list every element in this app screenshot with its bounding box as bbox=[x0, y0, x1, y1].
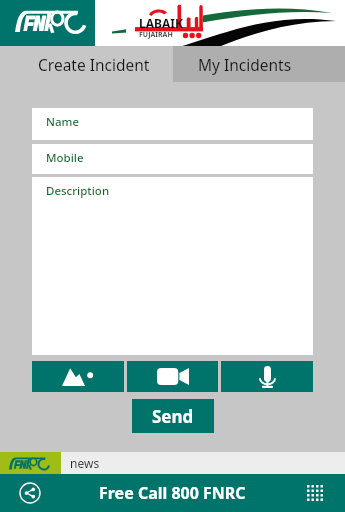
staticText: Mobile bbox=[46, 150, 84, 166]
button[interactable]: Record video bbox=[127, 361, 218, 392]
staticText: Name bbox=[46, 114, 79, 130]
button[interactable]: Free Call 800 FNRC bbox=[60, 474, 285, 512]
button[interactable]: Mobile bbox=[32, 144, 313, 174]
staticText: Description bbox=[46, 183, 110, 199]
button[interactable]: Send bbox=[132, 399, 214, 433]
staticText: Create Incident bbox=[38, 54, 150, 75]
staticText: LABAIK bbox=[139, 15, 183, 31]
button[interactable]: My Incidents bbox=[173, 46, 345, 82]
button[interactable]: Description bbox=[32, 177, 313, 355]
button[interactable]: Create Incident bbox=[0, 46, 173, 82]
button[interactable]: news bbox=[70, 452, 345, 474]
staticText: FUJAIRAH bbox=[139, 30, 173, 40]
button[interactable]: Name bbox=[32, 108, 313, 140]
staticText: Send bbox=[152, 405, 194, 428]
staticText: news bbox=[70, 455, 100, 471]
staticText: My Incidents bbox=[198, 54, 292, 75]
button[interactable]: Attach photo bbox=[32, 361, 124, 392]
button[interactable]: Menu bbox=[285, 474, 345, 512]
button[interactable]: Share bbox=[0, 474, 60, 512]
staticText: Free Call 800 FNRC bbox=[99, 482, 246, 504]
button[interactable]: Record audio bbox=[221, 361, 313, 392]
